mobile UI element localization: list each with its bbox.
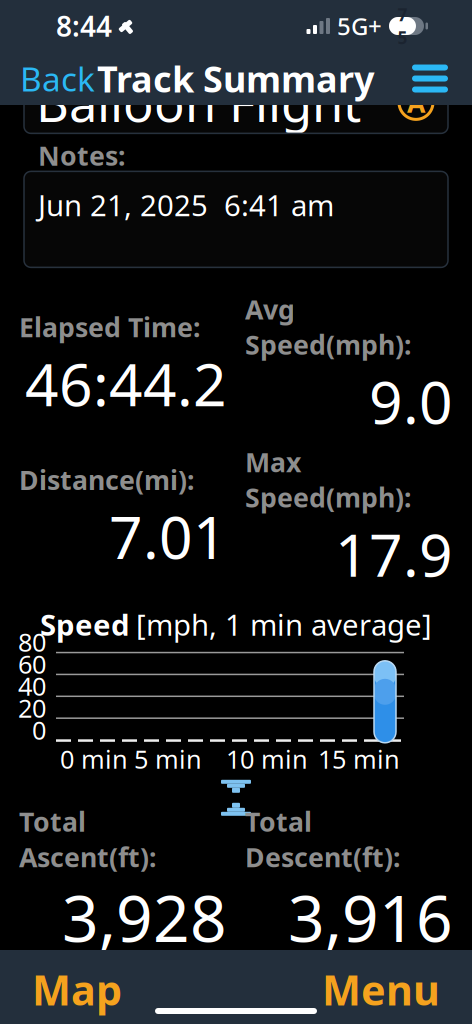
staticText: 20: [18, 691, 46, 725]
button[interactable]: Menu: [304, 952, 458, 1024]
button[interactable]: Take photo: [404, 31, 450, 73]
staticText: 80: [18, 625, 46, 659]
staticText: 8:44: [56, 7, 112, 45]
staticText: 40: [18, 669, 46, 703]
staticText: 5G+: [337, 10, 382, 42]
staticText: 46:44.2: [25, 344, 227, 422]
staticText: Balloon Flight: [36, 69, 361, 136]
staticText: 3,928: [62, 875, 227, 960]
staticText: 0: [32, 713, 46, 747]
staticText: Jun 21, 2025 6:41 am: [38, 185, 334, 224]
staticText: Max Pos. Gradient:: [19, 964, 142, 1024]
staticText: 3,916: [288, 875, 453, 960]
staticText: 5 min: [134, 742, 202, 776]
staticText: Max Speed(mph):: [245, 444, 411, 515]
staticText: 10 min: [226, 742, 308, 776]
staticText: Name:: [36, 35, 123, 70]
button[interactable]: Scroll down: [219, 776, 253, 796]
staticText: 0 min: [60, 742, 128, 776]
staticText: Max Neg. Gradient:: [245, 964, 370, 1024]
staticText: Avg Speed(mph):: [245, 291, 411, 362]
staticText: Notes:: [38, 138, 125, 173]
staticText: 7.01: [109, 497, 227, 575]
staticText: 75: [397, 3, 407, 49]
staticText: Back: [20, 56, 95, 101]
staticText: [mph, 1 min average]: [136, 605, 432, 644]
staticText: 60: [18, 647, 46, 681]
button[interactable]: Balloon Flight: [24, 71, 448, 133]
staticText: Map: [32, 962, 122, 1017]
button[interactable]: Scroll up: [219, 799, 253, 819]
staticText: 15 min: [318, 742, 400, 776]
staticText: Speed: [40, 605, 130, 644]
staticText: Elapsed Time:: [19, 309, 200, 344]
button[interactable]: Jun 21, 2025 6:41 am: [24, 171, 448, 267]
staticText: Total Descent(ft):: [245, 804, 400, 875]
staticText: 17.9: [335, 515, 453, 593]
staticText: Track Summary: [97, 55, 375, 102]
staticText: Total Ascent(ft):: [19, 804, 156, 875]
button[interactable]: Back: [6, 48, 109, 109]
staticText: 9.0: [369, 362, 453, 440]
staticText: Distance(mi):: [19, 462, 194, 497]
staticText: Menu: [322, 962, 440, 1017]
button[interactable]: Menu: [398, 54, 462, 102]
button[interactable]: Map: [14, 952, 140, 1024]
staticText: A: [407, 85, 425, 120]
